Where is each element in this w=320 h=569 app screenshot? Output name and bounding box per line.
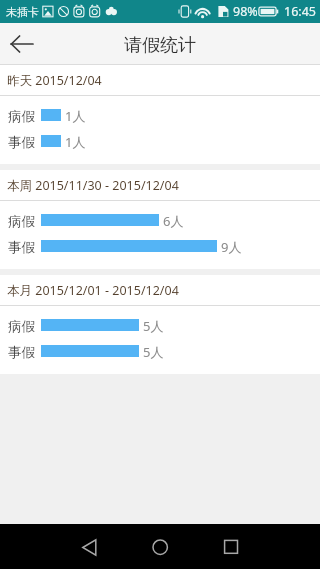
staticText: 请假统计: [124, 34, 196, 57]
staticText: 本周 2015/11/30 - 2015/12/04: [7, 177, 179, 194]
button[interactable]: Back: [65, 524, 113, 569]
staticText: 未插卡: [6, 5, 39, 19]
button[interactable]: Recents: [207, 524, 255, 569]
button[interactable]: Back: [0, 23, 44, 64]
staticText: 昨天 2015/12/04: [7, 72, 102, 89]
staticText: 病假: [8, 318, 35, 335]
staticText: 病假: [8, 213, 35, 230]
staticText: 1人: [65, 133, 86, 151]
staticText: 5人: [143, 317, 164, 335]
staticText: 病假: [8, 108, 35, 125]
staticText: 16:45: [284, 3, 316, 20]
staticText: 1人: [65, 107, 86, 125]
staticText: 5人: [143, 343, 164, 361]
staticText: 事假: [8, 239, 35, 256]
staticText: 本月 2015/12/01 - 2015/12/04: [7, 282, 179, 299]
staticText: 6人: [163, 212, 184, 230]
staticText: 9人: [221, 238, 242, 256]
staticText: 事假: [8, 344, 35, 361]
button[interactable]: Home: [136, 524, 184, 569]
staticText: 98%: [233, 3, 258, 20]
staticText: 事假: [8, 134, 35, 151]
